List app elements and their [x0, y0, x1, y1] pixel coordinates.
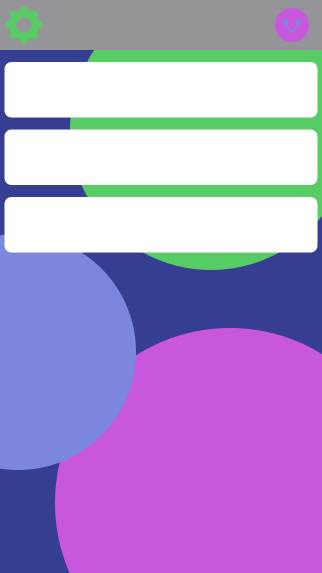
- button[interactable]: [4, 62, 317, 117]
- button[interactable]: [4, 197, 317, 252]
- button[interactable]: Settings: [0, 0, 48, 50]
- button[interactable]: Profile: [268, 0, 316, 50]
- button[interactable]: [4, 129, 317, 185]
